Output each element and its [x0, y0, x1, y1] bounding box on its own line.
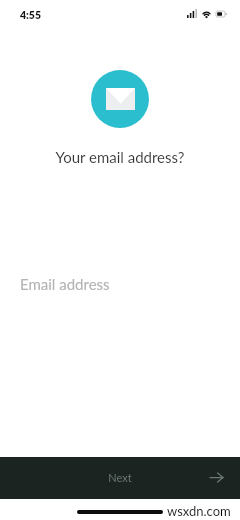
staticText: Your email address? [0, 148, 240, 166]
staticText: Next [0, 471, 240, 484]
staticText: 4:55 [20, 9, 42, 22]
staticText: wsxdn.com [167, 503, 231, 519]
staticText: Email address [20, 275, 110, 293]
button[interactable]: Email address [0, 268, 240, 300]
button[interactable]: Next [0, 457, 240, 499]
other: Next [209, 471, 223, 484]
